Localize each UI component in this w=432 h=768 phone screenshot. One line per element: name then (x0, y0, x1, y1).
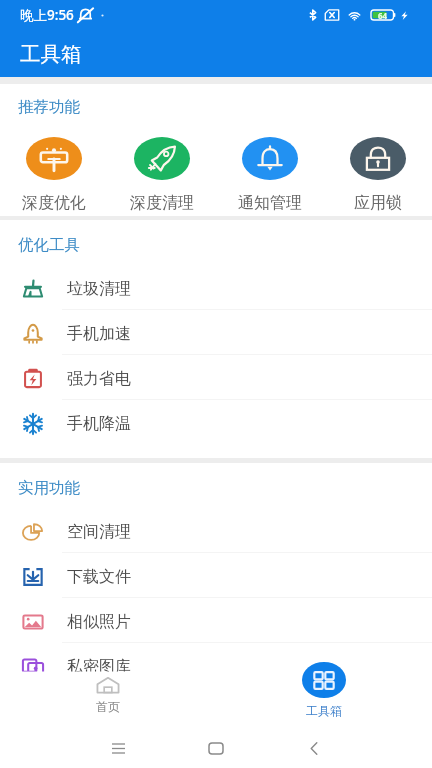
button[interactable]: 手机加速 (0, 310, 432, 355)
staticText: 垃圾清理 (67, 279, 131, 299)
staticText: 晚上9:56 (20, 6, 74, 24)
button[interactable]: 强力省电 (0, 355, 432, 400)
staticText: 手机加速 (67, 324, 131, 344)
staticText: 通知管理 (238, 193, 302, 213)
staticText: 强力省电 (67, 369, 131, 389)
button[interactable]: Home (196, 729, 236, 767)
staticText: 深度优化 (22, 193, 86, 213)
button[interactable]: 垃圾清理 (0, 265, 432, 310)
button[interactable]: 深度清理 (108, 126, 216, 216)
button[interactable]: 首页 (53, 665, 163, 714)
button[interactable]: 手机降温 (0, 400, 432, 445)
button[interactable]: 工具箱 (269, 662, 379, 718)
staticText: 应用锁 (354, 193, 402, 213)
staticText: 推荐功能 (18, 97, 80, 117)
button[interactable]: 通知管理 (216, 126, 324, 216)
staticText: 空间清理 (67, 522, 131, 542)
button[interactable]: 私密图库 (0, 643, 432, 688)
button[interactable]: 应用锁 (324, 126, 432, 216)
button[interactable]: 下载文件 (0, 553, 432, 598)
staticText: 实用功能 (18, 478, 80, 498)
button[interactable]: 空间清理 (0, 508, 432, 553)
staticText: 深度清理 (130, 193, 194, 213)
staticText: 64 (378, 10, 388, 20)
staticText: 相似照片 (67, 612, 131, 632)
staticText: 下载文件 (67, 567, 131, 587)
staticText: 私密图库 (67, 657, 131, 677)
staticText: 首页 (96, 699, 120, 714)
staticText: 手机降温 (67, 414, 131, 434)
button[interactable]: Back (294, 729, 334, 767)
staticText: 工具箱 (306, 703, 342, 718)
button[interactable]: 相似照片 (0, 598, 432, 643)
button[interactable]: 深度优化 (0, 126, 108, 216)
button[interactable]: Recents (98, 729, 138, 767)
staticText: 优化工具 (18, 235, 80, 255)
staticText: 工具箱 (20, 41, 82, 67)
